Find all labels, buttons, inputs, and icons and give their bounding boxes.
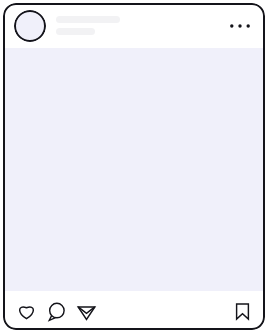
button[interactable]: Profile picture: [14, 10, 46, 42]
button[interactable]: Post image: [3, 48, 265, 291]
button[interactable]: More options: [226, 12, 254, 40]
button[interactable]: Profile picture: [3, 3, 265, 48]
button[interactable]: Share: [72, 297, 100, 325]
button[interactable]: Like: [12, 297, 40, 325]
button[interactable]: Save: [228, 297, 256, 325]
button[interactable]: Comment: [42, 297, 70, 325]
